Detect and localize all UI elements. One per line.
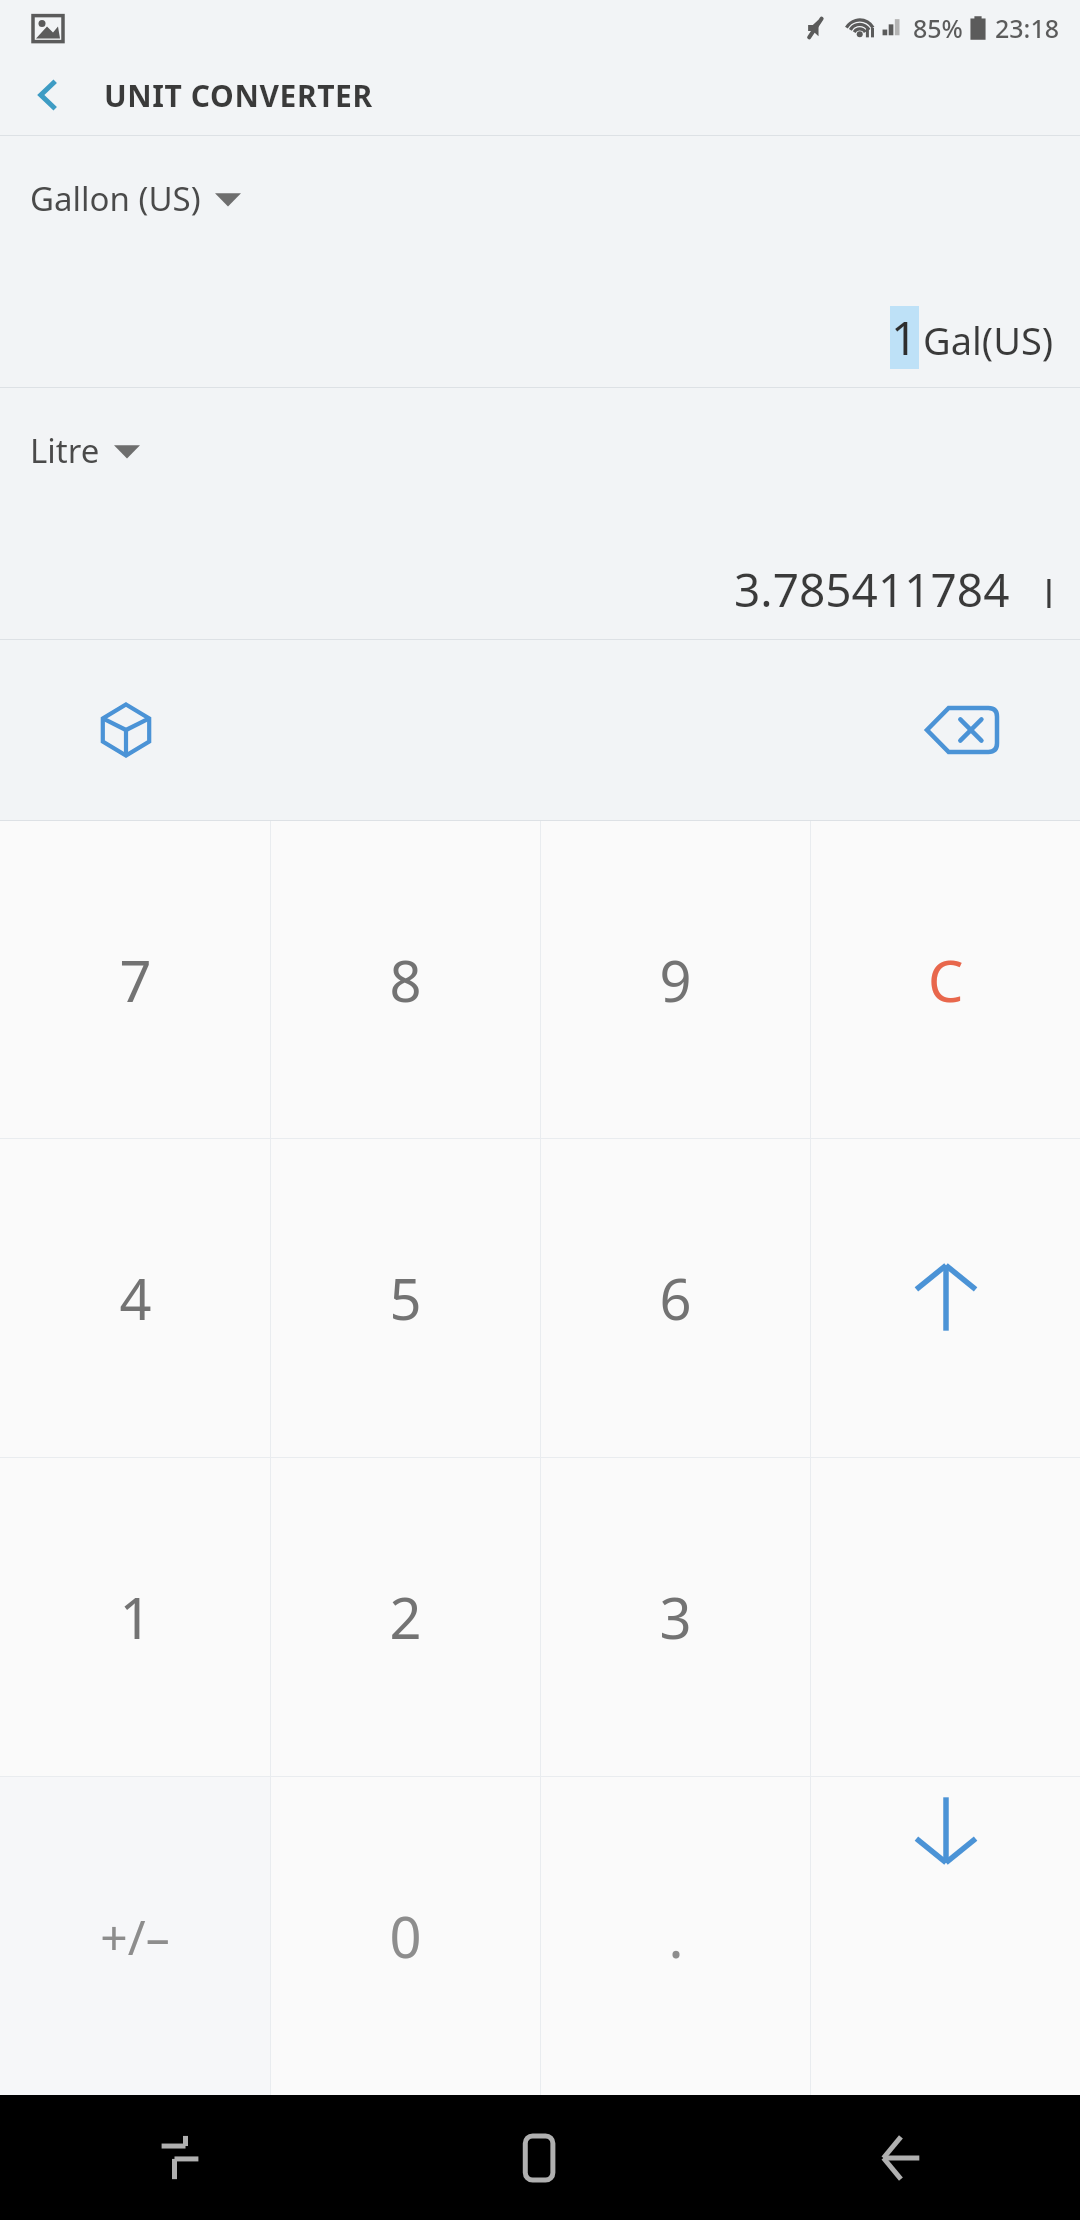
button[interactable]: 8 [271,821,540,1138]
button[interactable]: 6 [541,1139,810,1457]
button[interactable]: Scroll down [811,1777,1080,2095]
staticText: UNIT CONVERTER [104,75,373,116]
staticText: 0 [389,1898,422,1974]
button[interactable]: +/– [0,1777,270,2095]
staticText: 5 [389,1260,422,1336]
button[interactable]: Backspace [914,682,1010,778]
button[interactable]: Recents [0,2095,360,2220]
staticText: Gal(US) [923,314,1054,366]
button[interactable]: Units [78,682,174,778]
button[interactable]: 3 [541,1458,810,1776]
staticText: Litre [30,428,100,473]
button[interactable]: Back [720,2095,1080,2220]
button[interactable]: Back [20,67,76,123]
button[interactable]: 5 [271,1139,540,1457]
staticText: 3.785411784 [734,558,1010,621]
staticText: 1 [891,306,918,369]
staticText: 9 [659,942,692,1018]
staticText: Gallon (US) [30,176,201,221]
button[interactable]: 2 [271,1458,540,1776]
button[interactable]: C [811,821,1080,1138]
button[interactable]: Home [360,2095,720,2220]
button[interactable]: Gallon (US) [30,176,241,221]
staticText: 2 [389,1579,422,1655]
staticText: l [1044,567,1054,619]
staticText: . [668,1898,684,1974]
staticText: 3 [659,1579,692,1655]
staticText: +/– [100,1904,170,1969]
button[interactable]: Litre [30,428,140,473]
button[interactable]: 1 [0,1458,270,1776]
button[interactable]: 0 [271,1777,540,2095]
staticText: 7 [119,942,152,1018]
staticText: C [928,942,964,1018]
button[interactable]: Scroll up [811,1139,1080,1457]
button[interactable]: 4 [0,1139,270,1457]
button[interactable]: Litre [0,388,1080,639]
button[interactable]: 7 [0,821,270,1138]
staticText: 8 [389,942,422,1018]
button[interactable]: 9 [541,821,810,1138]
staticText: 1 [119,1579,152,1655]
staticText: 23:18 [995,11,1060,45]
button[interactable]: Gallon (US) [0,136,1080,387]
staticText: 6 [659,1260,692,1336]
staticText: 85% [913,11,963,45]
staticText: 4 [119,1260,152,1336]
